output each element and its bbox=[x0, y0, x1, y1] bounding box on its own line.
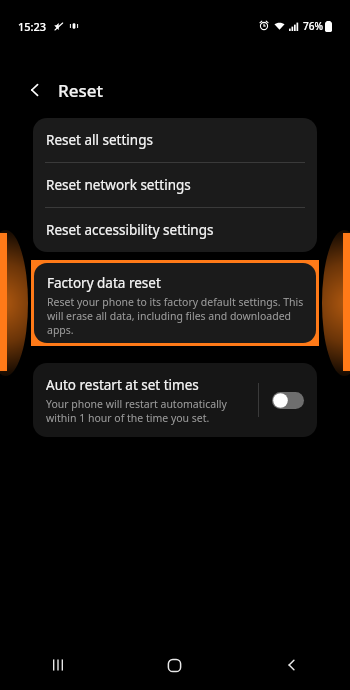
button[interactable]: Back bbox=[18, 73, 52, 107]
staticText: Auto restart at set times bbox=[46, 376, 199, 394]
staticText: 76% bbox=[303, 19, 323, 33]
staticText: Reset bbox=[58, 79, 104, 102]
button[interactable]: Auto restart toggle bbox=[259, 363, 317, 437]
button[interactable]: Reset network settings bbox=[33, 163, 317, 207]
button[interactable]: Home bbox=[116, 640, 233, 690]
staticText: Factory data reset bbox=[47, 274, 161, 292]
button[interactable]: Back bbox=[233, 640, 350, 690]
button[interactable]: Reset accessibility settings bbox=[33, 208, 317, 252]
staticText: Reset network settings bbox=[46, 176, 191, 194]
staticText: Reset all settings bbox=[46, 131, 153, 149]
button[interactable]: Factory data reset bbox=[34, 263, 316, 343]
staticText: 15:23 bbox=[18, 19, 47, 34]
staticText: Your phone will restart automatically wi… bbox=[46, 397, 250, 425]
button[interactable]: Auto restart at set times bbox=[33, 363, 317, 437]
staticText: Reset accessibility settings bbox=[46, 221, 214, 239]
staticText: Reset your phone to its factory default … bbox=[47, 295, 304, 337]
button[interactable]: Reset all settings bbox=[33, 118, 317, 162]
button[interactable]: Recent apps bbox=[0, 640, 116, 690]
